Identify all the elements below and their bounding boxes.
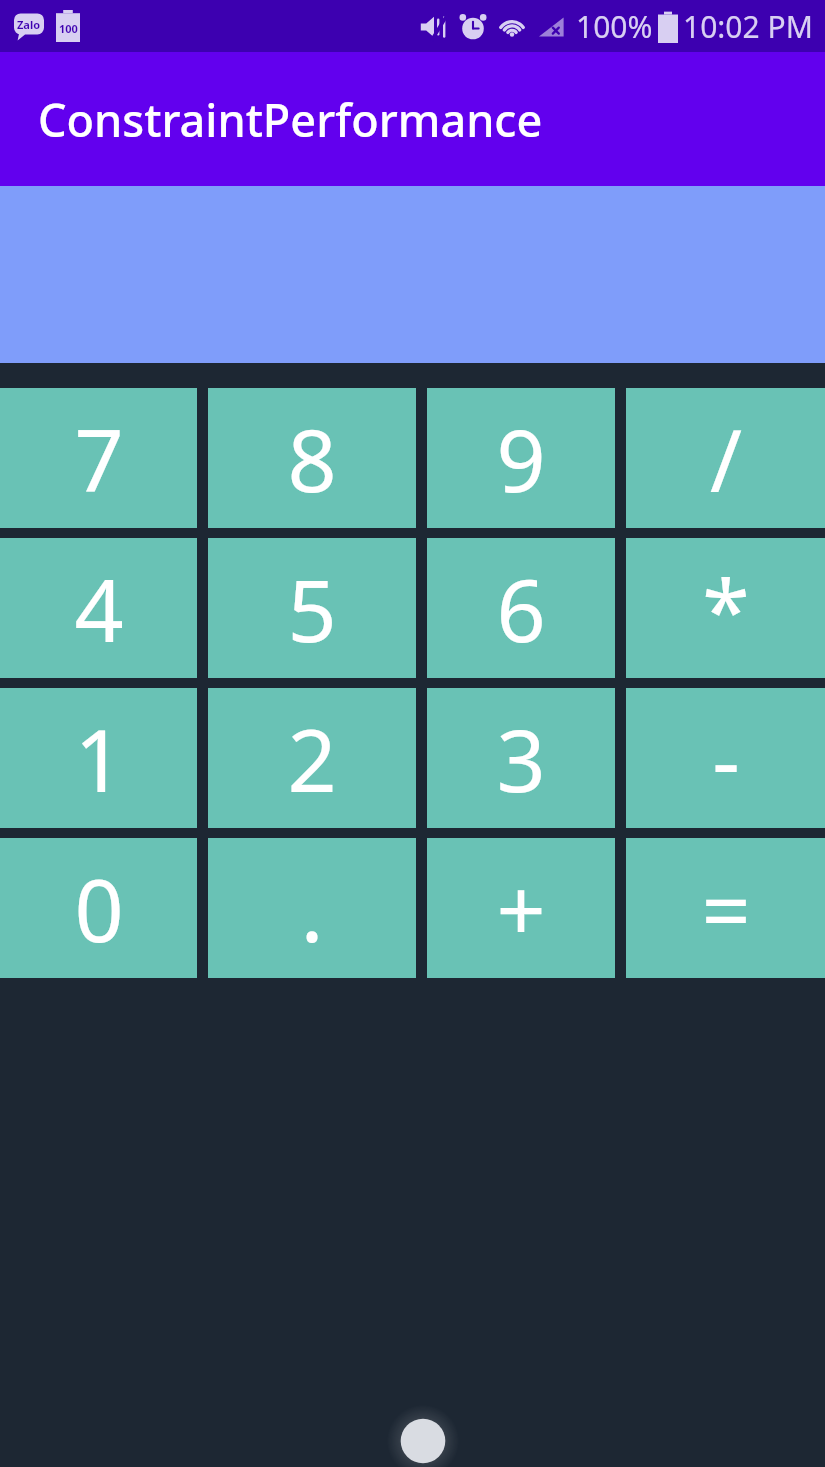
- staticText: 5: [287, 550, 337, 667]
- button[interactable]: =: [626, 838, 825, 978]
- button[interactable]: 1: [0, 688, 197, 828]
- button[interactable]: 4: [0, 538, 197, 678]
- staticText: 1: [74, 700, 124, 817]
- button[interactable]: /: [626, 388, 825, 528]
- staticText: 100: [59, 21, 78, 36]
- button[interactable]: 6: [427, 538, 615, 678]
- staticText: 6: [496, 550, 546, 667]
- staticText: =: [701, 850, 751, 967]
- button[interactable]: .: [208, 838, 416, 978]
- staticText: 9: [496, 400, 546, 517]
- staticText: -: [712, 700, 740, 817]
- button[interactable]: 2: [208, 688, 416, 828]
- staticText: 10:02 PM: [683, 6, 813, 47]
- other: Home: [387, 1405, 459, 1467]
- staticText: 7: [74, 400, 124, 517]
- staticText: Zalo: [17, 17, 41, 32]
- button[interactable]: 9: [427, 388, 615, 528]
- staticText: 3: [496, 700, 546, 817]
- staticText: /: [710, 400, 742, 517]
- staticText: ConstraintPerformance: [38, 89, 543, 150]
- button[interactable]: 7: [0, 388, 197, 528]
- staticText: 2: [287, 700, 337, 817]
- button[interactable]: 3: [427, 688, 615, 828]
- staticText: 100%: [576, 6, 653, 47]
- button[interactable]: 0: [0, 838, 197, 978]
- staticText: 4: [74, 550, 124, 667]
- button[interactable]: -: [626, 688, 825, 828]
- staticText: *: [702, 550, 750, 667]
- staticText: +: [496, 850, 546, 967]
- button[interactable]: *: [626, 538, 825, 678]
- staticText: 8: [287, 400, 337, 517]
- button[interactable]: 8: [208, 388, 416, 528]
- staticText: 0: [74, 850, 124, 967]
- button[interactable]: +: [427, 838, 615, 978]
- button[interactable]: 5: [208, 538, 416, 678]
- staticText: .: [300, 850, 324, 967]
